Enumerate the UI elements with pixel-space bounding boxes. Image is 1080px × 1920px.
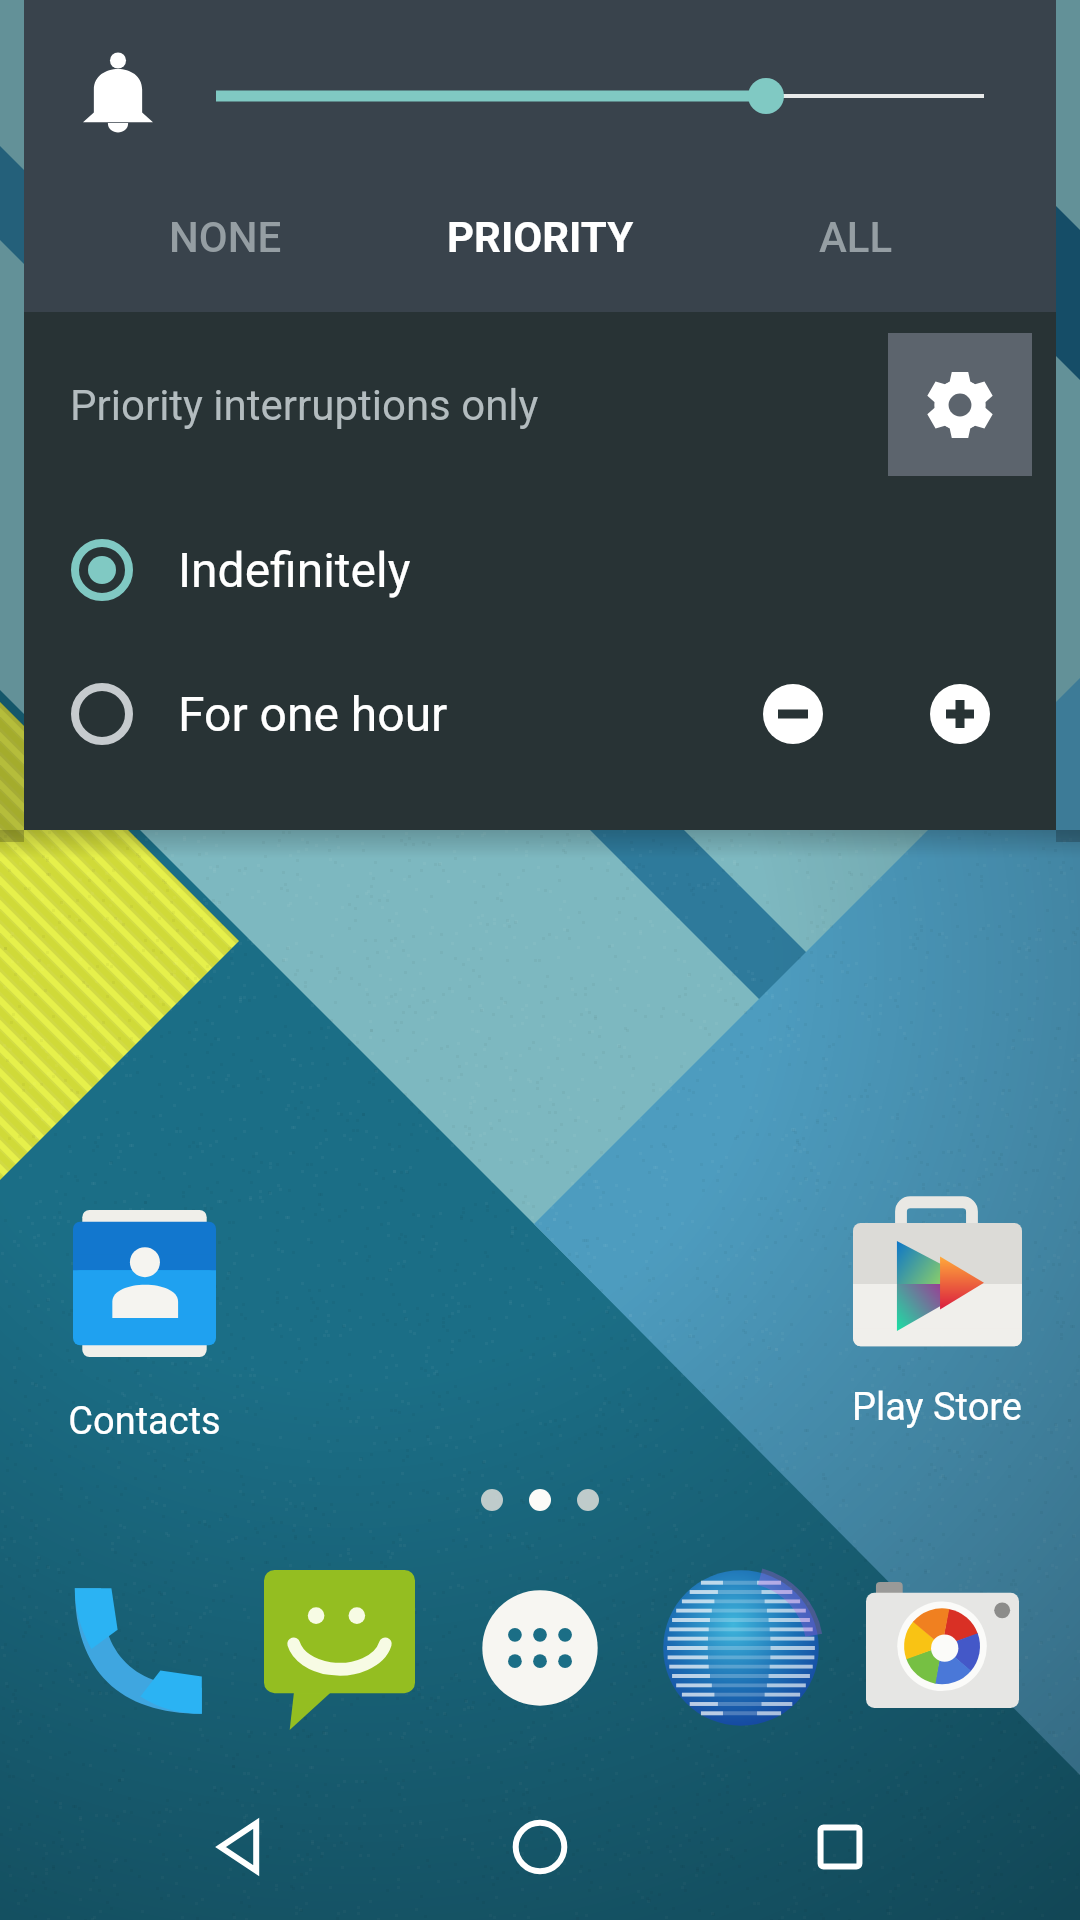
button[interactable]: Camera xyxy=(866,1582,1019,1708)
button[interactable]: Indefinitely xyxy=(24,508,1056,632)
button[interactable]: Ringer mode xyxy=(61,42,1080,74)
button[interactable]: For one hour xyxy=(24,652,763,776)
button[interactable]: Recents xyxy=(785,1792,895,1902)
staticText: NONE xyxy=(169,213,282,262)
button[interactable]: ALL xyxy=(698,162,1013,312)
staticText: Priority interruptions only xyxy=(70,381,539,430)
button[interactable]: Phone xyxy=(70,1580,208,1718)
button[interactable]: Increase xyxy=(930,684,990,744)
staticText: PRIORITY xyxy=(447,213,634,262)
staticText: For one hour xyxy=(178,686,448,742)
staticText: Contacts xyxy=(68,1399,221,1444)
button[interactable]: Decrease xyxy=(763,684,823,744)
button[interactable]: Do not disturb settings xyxy=(888,333,1032,476)
button[interactable]: Play Store xyxy=(828,1197,1046,1430)
button[interactable]: NONE xyxy=(67,162,383,312)
button[interactable]: Apps xyxy=(474,1582,606,1714)
button[interactable]: Back xyxy=(185,1792,295,1902)
button[interactable]: Browser xyxy=(660,1567,822,1729)
button[interactable]: PRIORITY xyxy=(383,162,698,312)
button[interactable]: Notification volume xyxy=(24,0,1056,162)
staticText: ALL xyxy=(819,213,893,262)
staticText: Indefinitely xyxy=(178,542,411,598)
button[interactable]: Home xyxy=(485,1792,595,1902)
button[interactable]: Contacts xyxy=(34,1210,254,1444)
staticText: Play Store xyxy=(852,1385,1022,1430)
button[interactable]: Messaging xyxy=(264,1570,415,1730)
